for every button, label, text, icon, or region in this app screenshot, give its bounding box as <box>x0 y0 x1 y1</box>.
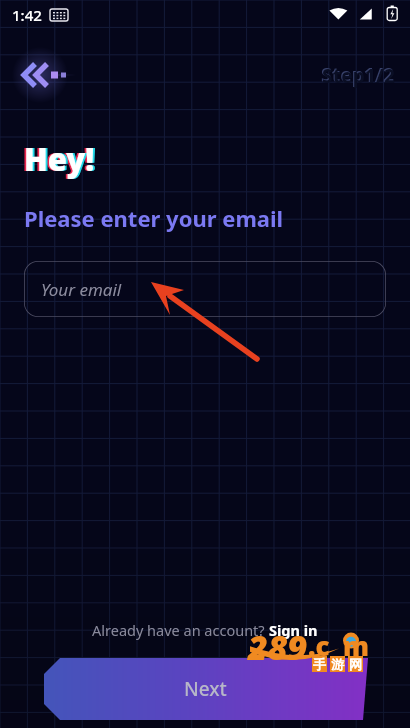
staticText: Sign in <box>269 620 318 640</box>
staticText: Your email <box>41 278 122 301</box>
staticText: 手 <box>313 656 326 672</box>
button[interactable]: Next <box>0 658 410 720</box>
staticText: .c m <box>308 628 370 663</box>
button[interactable]: Back <box>16 53 76 97</box>
staticText: Hey! <box>24 138 95 180</box>
staticText: Hey! <box>26 138 97 180</box>
staticText: Hey! <box>22 138 93 180</box>
staticText: Step1/2 <box>322 63 395 89</box>
staticText: Please enter your email <box>24 203 284 233</box>
staticText: Already have an account? <box>92 620 269 640</box>
staticText: Step1/2 <box>321 62 394 88</box>
button[interactable]: Your email <box>24 261 386 317</box>
staticText: 网 <box>349 656 362 672</box>
staticText: 289 <box>248 624 308 670</box>
staticText: Next <box>184 676 227 702</box>
staticText: 游 <box>331 656 344 672</box>
button[interactable]: Sign in <box>269 620 318 640</box>
staticText: 1:42 <box>12 5 42 25</box>
